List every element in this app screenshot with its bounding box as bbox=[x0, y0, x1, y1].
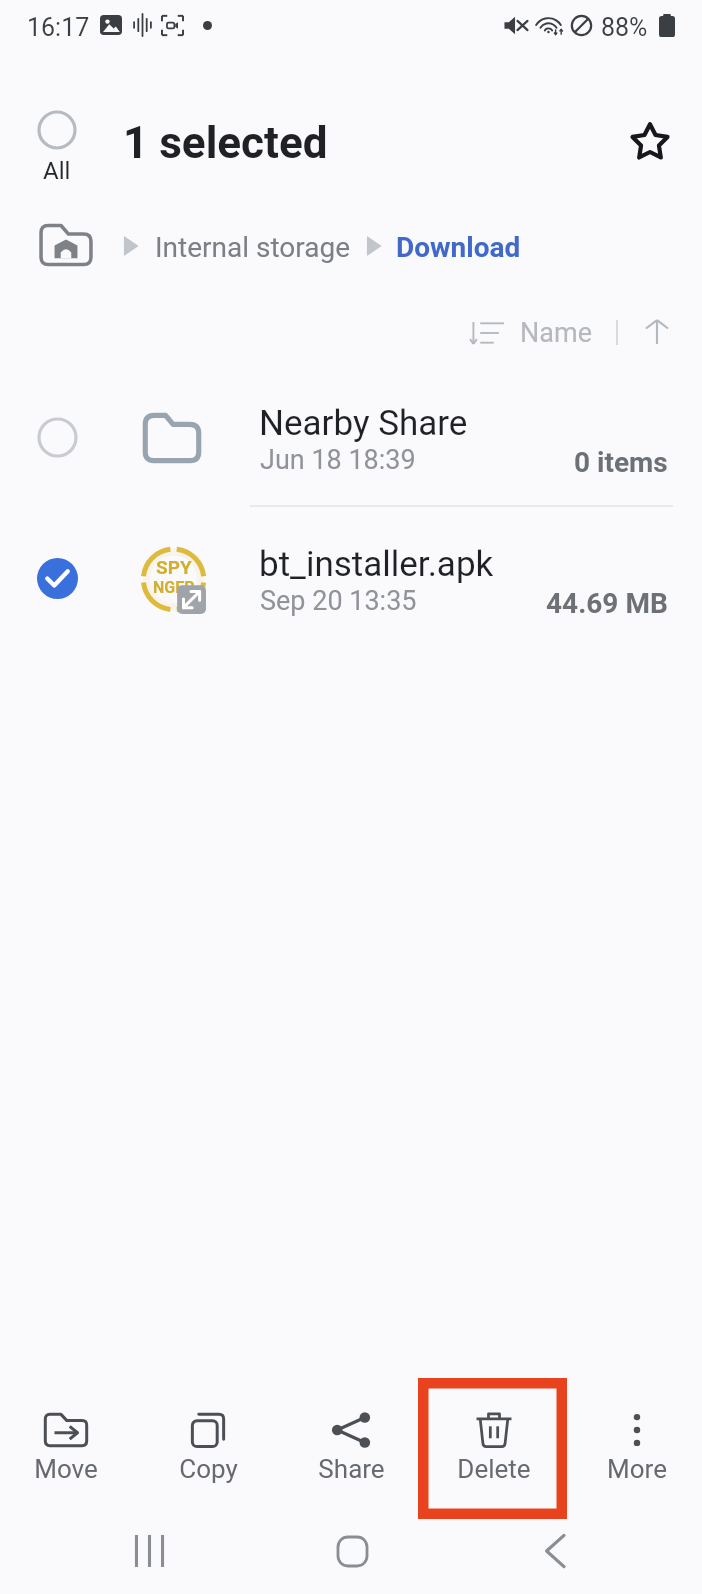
staticText: 0 items bbox=[574, 446, 668, 479]
staticText: Jun 18 18:39 bbox=[260, 444, 416, 476]
button[interactable]: Delete bbox=[431, 1388, 557, 1498]
staticText: Download bbox=[396, 231, 521, 264]
button[interactable]: Back bbox=[515, 1511, 595, 1591]
button[interactable]: Deselect bt_installer.apk bbox=[13, 515, 101, 641]
staticText: Share bbox=[318, 1454, 385, 1484]
staticText: More bbox=[607, 1454, 667, 1484]
staticText: SPY bbox=[156, 556, 192, 578]
button[interactable]: Share bbox=[288, 1388, 414, 1498]
button[interactable]: Sort ascending bbox=[634, 308, 680, 354]
staticText: 88% bbox=[601, 13, 648, 42]
staticText: Delete bbox=[457, 1454, 531, 1484]
button[interactable]: Internal storage bbox=[155, 231, 351, 264]
staticText: bt_installer.apk bbox=[259, 544, 494, 585]
button[interactable]: Recent apps bbox=[109, 1511, 189, 1591]
button[interactable]: Favorites bbox=[617, 108, 683, 174]
staticText: All bbox=[43, 157, 71, 185]
staticText: Name bbox=[520, 317, 592, 349]
staticText: 1 selected bbox=[123, 117, 328, 169]
staticText: Sep 20 13:35 bbox=[260, 585, 417, 617]
button[interactable]: More bbox=[574, 1388, 700, 1498]
staticText: NGER bbox=[153, 578, 195, 597]
button[interactable]: Home bbox=[312, 1511, 392, 1591]
button[interactable]: Select Nearby Share bbox=[13, 374, 101, 500]
staticText: Nearby Share bbox=[259, 403, 468, 444]
button[interactable]: Move bbox=[3, 1388, 129, 1498]
staticText: Internal storage bbox=[155, 231, 351, 264]
staticText: Move bbox=[34, 1454, 98, 1484]
button[interactable]: Select Nearby Share bbox=[0, 374, 702, 500]
staticText: Copy bbox=[179, 1454, 238, 1484]
button[interactable]: Copy bbox=[145, 1388, 271, 1498]
button[interactable]: Deselect bt_installer.apk bbox=[0, 515, 702, 641]
staticText: 16:17 bbox=[27, 13, 90, 42]
button[interactable]: Home folder bbox=[38, 217, 94, 273]
staticText: 44.69 MB bbox=[546, 587, 668, 620]
button[interactable]: Download bbox=[396, 231, 521, 264]
button[interactable]: All bbox=[20, 110, 94, 185]
button[interactable]: Name bbox=[470, 313, 592, 353]
